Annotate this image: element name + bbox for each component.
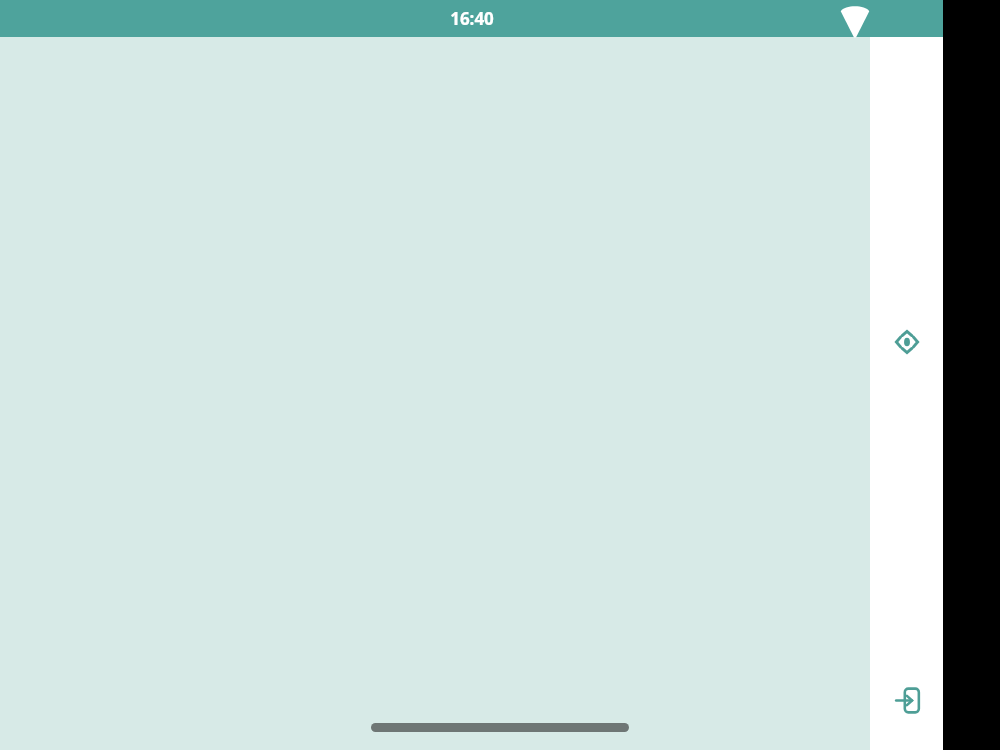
button[interactable]: Exit	[885, 678, 929, 722]
staticText: 16:40	[450, 7, 494, 30]
button[interactable]: Home	[371, 723, 629, 732]
button[interactable]: Move	[885, 320, 929, 364]
other: Signal indicator	[838, 4, 872, 37]
